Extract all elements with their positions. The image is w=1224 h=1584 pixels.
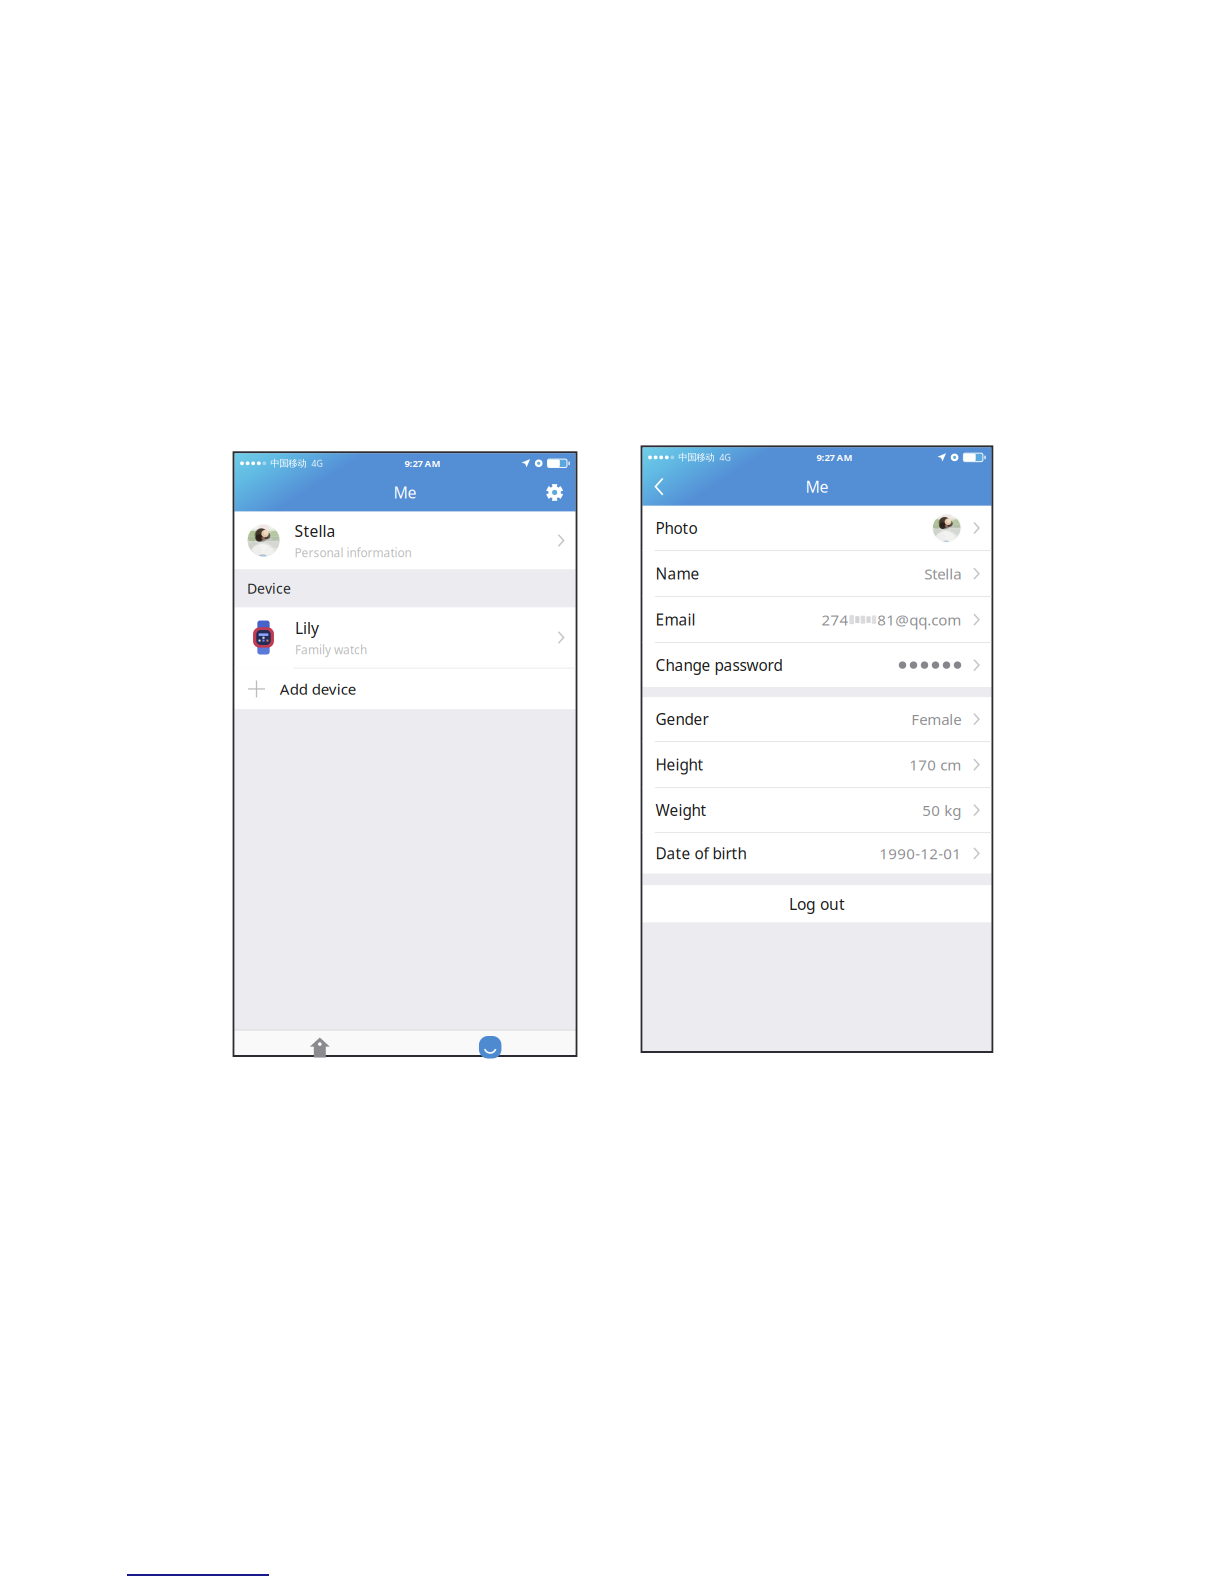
button[interactable]: Log out (643, 885, 991, 923)
staticText: Date of birth (655, 843, 746, 864)
staticText: 50 kg (922, 800, 961, 820)
staticText: Weight (655, 800, 706, 821)
button[interactable]: Add device (235, 669, 575, 709)
button[interactable]: Home (235, 1031, 405, 1055)
staticText: 81@qq.com (877, 609, 961, 630)
button[interactable]: Photo (643, 506, 991, 551)
staticText: Device (247, 579, 291, 598)
button[interactable]: Name (643, 551, 991, 597)
staticText: Photo (655, 518, 697, 538)
staticText: 4G (719, 451, 731, 463)
button[interactable]: Change password (643, 643, 991, 687)
staticText: 9:27 AM (404, 457, 440, 470)
button[interactable]: Lily (235, 607, 575, 669)
staticText: Stella (295, 520, 336, 541)
staticText: Stella (924, 563, 961, 584)
staticText: Lily (295, 617, 319, 638)
button[interactable]: Weight (643, 788, 991, 833)
button[interactable]: Stella (235, 512, 575, 569)
staticText: Height (655, 754, 703, 775)
button[interactable]: Gender (643, 697, 991, 742)
staticText: Me (393, 482, 416, 503)
button[interactable]: Me (405, 1031, 575, 1055)
staticText: Change password (655, 655, 782, 676)
staticText: 1990-12-01 (879, 843, 961, 864)
staticText: Name (655, 563, 699, 584)
button[interactable]: Date of birth (643, 833, 991, 874)
staticText: 中国移动 (270, 457, 306, 469)
button[interactable]: Email (643, 597, 991, 643)
staticText: Add device (280, 679, 356, 699)
staticText: 4G (311, 457, 323, 469)
staticText: 170 cm (909, 754, 961, 775)
staticText: 中国移动 (678, 451, 714, 463)
button[interactable]: Settings (541, 475, 568, 510)
staticText: Log out (789, 893, 845, 914)
staticText: 9:27 AM (816, 451, 852, 464)
staticText: Female (911, 709, 961, 729)
staticText: Personal information (295, 544, 412, 561)
staticText: Me (805, 476, 828, 497)
button[interactable]: Back (650, 472, 669, 502)
staticText: Gender (655, 709, 708, 730)
staticText: Family watch (295, 641, 367, 658)
staticText: 274 (821, 609, 848, 630)
button[interactable]: Height (643, 742, 991, 788)
staticText: Email (655, 609, 695, 630)
